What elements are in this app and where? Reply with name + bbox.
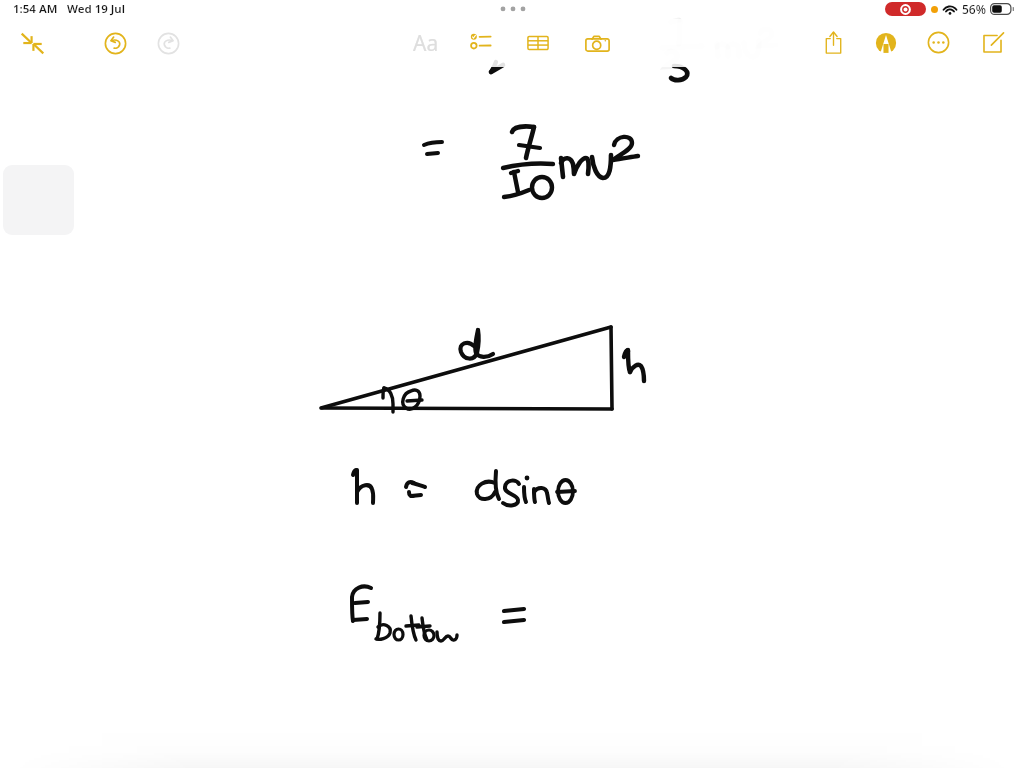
button[interactable]: Checklist: [461, 21, 503, 63]
button[interactable]: New note: [971, 22, 1013, 64]
button[interactable]: Highlighter: [865, 22, 907, 64]
button[interactable]: Undo: [94, 22, 136, 64]
button[interactable]: Table: [517, 22, 559, 64]
button[interactable]: Camera: [576, 22, 618, 64]
staticText: Aa: [413, 29, 439, 55]
button[interactable]: More options: [917, 21, 959, 63]
staticText: Wed 19 Jul: [67, 1, 125, 17]
button[interactable]: Redo: [147, 22, 189, 64]
staticText: 56%: [962, 1, 986, 17]
button[interactable]: Text formatting: [403, 29, 448, 55]
button[interactable]: Share: [812, 21, 854, 63]
button[interactable]: Recording: [885, 2, 926, 16]
button[interactable]: Collapse: [11, 22, 53, 64]
staticText: 1:54 AM: [13, 1, 58, 17]
